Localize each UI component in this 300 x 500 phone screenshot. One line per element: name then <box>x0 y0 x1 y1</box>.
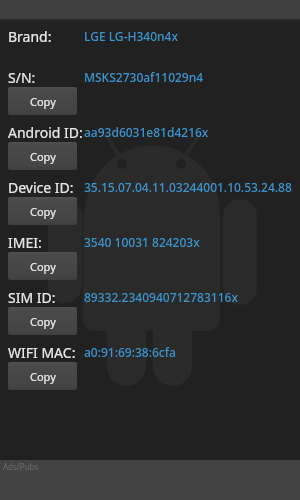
staticText: 3540 10031 824203x <box>84 234 200 250</box>
staticText: Copy <box>30 369 56 384</box>
button[interactable]: Copy <box>8 362 77 390</box>
staticText: Ads/Pubs <box>3 461 39 472</box>
staticText: S/N: <box>8 68 84 87</box>
staticText: aa93d6031e81d4216x <box>84 124 209 140</box>
button[interactable]: Copy <box>8 142 77 170</box>
staticText: Copy <box>30 149 56 164</box>
staticText: LGE LG-H340n4x <box>84 28 178 44</box>
staticText: 89332.2340940712783116x <box>84 289 238 305</box>
staticText: IMEI: <box>8 233 84 252</box>
staticText: Copy <box>30 259 56 274</box>
staticText: Device ID: <box>8 178 84 197</box>
button[interactable]: Copy <box>8 252 77 280</box>
staticText: Copy <box>30 314 56 329</box>
button[interactable]: Copy <box>8 307 77 335</box>
staticText: 35.15.07.04.11.03244001.10.53.24.88 <box>84 179 292 195</box>
staticText: MSKS2730af11029n4 <box>84 69 204 85</box>
button[interactable]: Copy <box>8 197 77 225</box>
staticText: Copy <box>30 204 56 219</box>
staticText: Copy <box>30 94 56 109</box>
staticText: Brand: <box>8 27 84 46</box>
staticText: Android ID: <box>8 123 84 142</box>
staticText: SIM ID: <box>8 288 84 307</box>
button[interactable]: Copy <box>8 87 77 115</box>
staticText: a0:91:69:38:6cfa <box>84 344 176 360</box>
staticText: WIFI MAC: <box>8 343 84 362</box>
